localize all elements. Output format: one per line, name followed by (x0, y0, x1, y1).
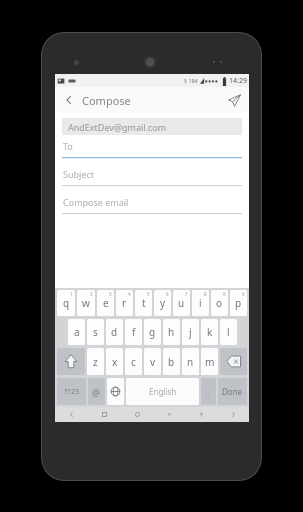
staticText: k (207, 325, 213, 339)
staticText: 14:29 (229, 76, 247, 86)
staticText: b (168, 355, 175, 369)
button[interactable]: f (125, 319, 142, 345)
staticText: l (227, 325, 230, 339)
button[interactable]: d (106, 319, 123, 345)
staticText: 0 (242, 291, 245, 297)
button[interactable]: Previous (55, 407, 88, 422)
staticText: y (160, 296, 166, 310)
button[interactable]: u (173, 290, 190, 316)
button[interactable]: s (87, 319, 104, 345)
staticText: e (103, 296, 109, 310)
staticText: w (82, 296, 90, 310)
staticText: Compose email (63, 196, 129, 208)
staticText: x (112, 355, 118, 369)
button[interactable]: j (182, 319, 199, 345)
button[interactable]: o (211, 290, 228, 316)
staticText: 4 (128, 291, 131, 297)
staticText: 5 (147, 291, 150, 297)
button[interactable]: p (230, 290, 247, 316)
button[interactable]: Compose email (62, 191, 242, 219)
staticText: z (93, 355, 98, 369)
staticText: AndExtDev@gmail.com (68, 121, 167, 133)
button[interactable]: w (77, 290, 95, 316)
staticText: h (168, 325, 175, 339)
button[interactable]: English (126, 378, 199, 405)
staticText: 1 (70, 291, 73, 297)
button[interactable]: g (144, 319, 161, 345)
button[interactable]: Home (121, 407, 153, 422)
staticText: p (235, 296, 242, 310)
staticText: 5 (184, 78, 187, 85)
staticText: g (149, 325, 156, 339)
staticText: To (63, 140, 73, 152)
staticText: c (131, 355, 136, 369)
staticText: d (111, 325, 118, 339)
button[interactable]: Recents (88, 407, 121, 422)
button[interactable]: t (135, 290, 152, 316)
staticText: @ (92, 386, 101, 398)
button[interactable]: n (182, 348, 199, 375)
staticText: Compose (82, 93, 131, 108)
button[interactable]: e (97, 290, 114, 316)
button[interactable]: i (192, 290, 209, 316)
button[interactable]: @ (88, 378, 105, 405)
button[interactable]: m (201, 348, 218, 375)
staticText: q (63, 296, 70, 310)
staticText: 7 (185, 291, 188, 297)
staticText: o (216, 296, 223, 310)
button[interactable]: b (163, 348, 180, 375)
staticText: ?123 (64, 387, 80, 397)
button[interactable]: y (154, 290, 171, 316)
button[interactable]: h (163, 319, 180, 345)
button[interactable]: a (68, 319, 85, 345)
button[interactable]: Done (218, 378, 247, 405)
button[interactable]: x (106, 348, 123, 375)
button[interactable]: Subject (62, 163, 242, 191)
button[interactable]: Change language (107, 378, 124, 405)
staticText: a (74, 325, 80, 339)
staticText: n (187, 355, 194, 369)
staticText: 6 (166, 291, 169, 297)
staticText: 3 (109, 291, 112, 297)
staticText: 184 (189, 78, 198, 85)
staticText: Done (222, 386, 243, 397)
button[interactable]: l (220, 319, 237, 345)
staticText: s (93, 325, 98, 339)
button[interactable]: q (57, 290, 75, 316)
button[interactable]: Next (217, 407, 249, 422)
button[interactable]: ?123 (57, 378, 86, 405)
button[interactable]: Menu (185, 407, 217, 422)
staticText: u (178, 296, 185, 310)
staticText: r (122, 296, 127, 310)
button[interactable]: Backspace (220, 348, 247, 375)
button[interactable]: v (144, 348, 161, 375)
button[interactable]: k (201, 319, 218, 345)
staticText: Subject (63, 168, 95, 180)
staticText: i (199, 296, 202, 310)
staticText: v (150, 355, 156, 369)
staticText: 8 (204, 291, 207, 297)
button[interactable]: Back (58, 89, 80, 111)
staticText: 9 (223, 291, 226, 297)
staticText: English (149, 386, 177, 397)
staticText: 2 (90, 291, 93, 297)
button[interactable]: z (87, 348, 104, 375)
staticText: . (207, 386, 210, 397)
staticText: j (189, 325, 192, 339)
button[interactable]: c (125, 348, 142, 375)
button[interactable]: Hide keyboard (153, 407, 185, 422)
button[interactable]: To (62, 135, 242, 163)
staticText: m (205, 355, 215, 369)
button[interactable]: Send (222, 88, 246, 112)
button[interactable]: r (116, 290, 133, 316)
button[interactable]: Shift (57, 348, 85, 375)
staticText: f (132, 325, 136, 339)
button[interactable]: AndExtDev@gmail.com (62, 118, 242, 135)
staticText: t (142, 296, 146, 310)
